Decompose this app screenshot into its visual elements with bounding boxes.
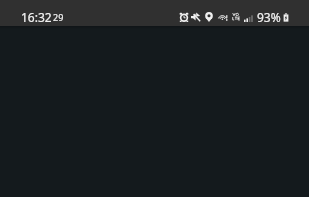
other: Battery 93 percent, charging xyxy=(283,13,289,22)
staticText: 93% xyxy=(257,9,281,25)
other: Alarm set xyxy=(179,12,189,22)
other: Wi-Fi connected xyxy=(218,13,228,22)
other: Ringer muted xyxy=(191,12,201,22)
staticText: 29 xyxy=(53,11,64,23)
staticText: 16:32 xyxy=(21,9,52,25)
other: VoLTE xyxy=(232,12,241,22)
other: Location in use xyxy=(205,12,213,22)
other: Mobile signal xyxy=(244,15,252,22)
